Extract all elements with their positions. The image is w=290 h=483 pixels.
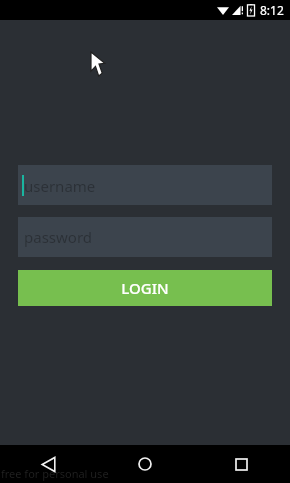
button[interactable]: LOGIN (18, 270, 272, 306)
staticText: 8:12 (260, 2, 284, 18)
staticText: username (24, 176, 96, 196)
button[interactable]: Back (0, 445, 96, 483)
staticText: LOGIN (121, 278, 169, 298)
staticText: password (24, 227, 92, 247)
staticText: free for personal use (1, 466, 109, 481)
button[interactable]: Recent apps (193, 445, 290, 483)
button[interactable]: username (18, 165, 272, 205)
button[interactable]: Home (96, 445, 193, 483)
